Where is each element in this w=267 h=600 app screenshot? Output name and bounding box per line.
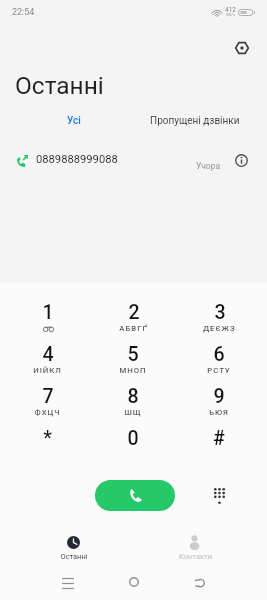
button[interactable]: *: [5, 425, 90, 467]
staticText: Останні: [60, 552, 88, 561]
staticText: МНОП: [119, 366, 147, 375]
button[interactable]: Settings: [231, 37, 253, 59]
button[interactable]: 5: [90, 341, 176, 383]
button[interactable]: Контакти: [133, 518, 267, 564]
staticText: 1: [42, 301, 54, 324]
staticText: Пропущені дзвінки: [150, 115, 240, 127]
staticText: 3: [214, 301, 226, 324]
staticText: АБВГҐ: [119, 324, 148, 333]
button[interactable]: Show dialpad: [205, 481, 234, 510]
staticText: Останні: [15, 71, 104, 100]
staticText: ЬЮЯ: [209, 408, 229, 417]
button[interactable]: Recent apps: [34, 566, 101, 600]
staticText: 412: [225, 6, 236, 14]
staticText: 2: [128, 301, 140, 324]
button[interactable]: 0: [90, 425, 176, 467]
staticText: #: [213, 427, 225, 450]
staticText: Контакти: [179, 552, 212, 561]
button[interactable]: #: [176, 425, 262, 467]
staticText: 4: [42, 343, 54, 366]
button[interactable]: 6: [176, 341, 262, 383]
button[interactable]: Home: [100, 566, 167, 600]
staticText: 5: [127, 343, 139, 366]
staticText: 0889888999088: [36, 153, 118, 166]
button[interactable]: Back: [166, 566, 233, 600]
button[interactable]: Пропущені дзвінки: [141, 110, 248, 132]
staticText: 7: [42, 385, 54, 408]
button[interactable]: 9: [176, 383, 262, 425]
staticText: 9: [213, 385, 225, 408]
button[interactable]: 1: [5, 299, 90, 341]
staticText: ШЩ: [124, 408, 142, 417]
button[interactable]: 7: [5, 383, 90, 425]
button[interactable]: 0889888999088: [0, 144, 267, 178]
button[interactable]: 8: [90, 383, 176, 425]
staticText: ФХЦЧ: [34, 408, 61, 417]
button[interactable]: Call details: [231, 150, 252, 171]
staticText: Усі: [67, 115, 81, 127]
staticText: *: [43, 427, 52, 450]
button[interactable]: 4: [5, 341, 90, 383]
staticText: ДЕЄЖЗ: [203, 324, 236, 333]
staticText: 0: [127, 427, 139, 450]
staticText: KB/s: [226, 12, 235, 17]
button[interactable]: 2: [90, 299, 176, 341]
staticText: 6: [213, 343, 225, 366]
button[interactable]: 3: [176, 299, 262, 341]
button[interactable]: Усі: [0, 110, 148, 132]
staticText: Учора: [196, 161, 221, 171]
button[interactable]: Call: [95, 480, 175, 511]
staticText: ИІЙКЛ: [33, 366, 62, 375]
button[interactable]: Останні: [0, 518, 133, 564]
staticText: 22:54: [12, 7, 35, 18]
staticText: 8: [127, 385, 139, 408]
staticText: РСТУ: [207, 366, 231, 375]
